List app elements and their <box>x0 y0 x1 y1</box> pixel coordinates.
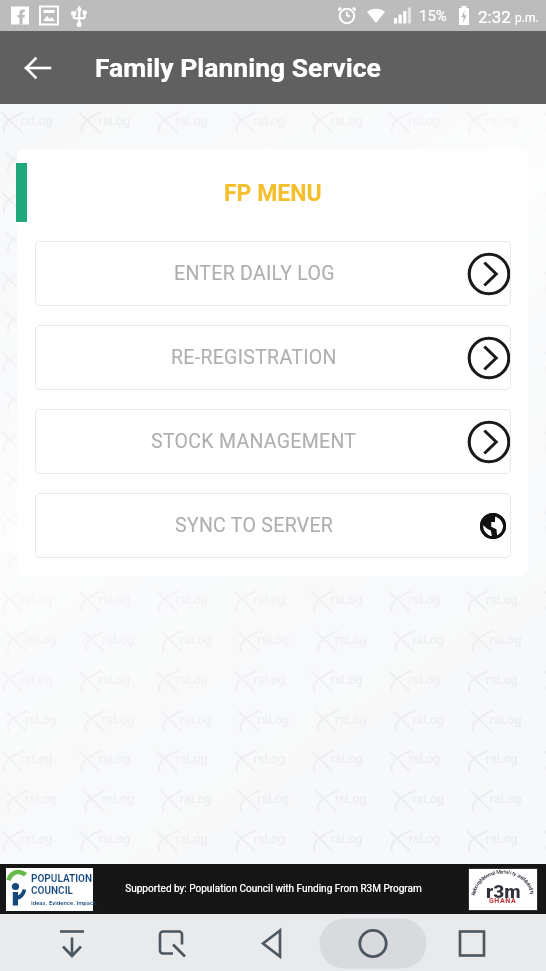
button[interactable]: Recent apps <box>448 920 498 966</box>
staticText: FP MENU <box>224 180 322 207</box>
staticText: Ideas. Evidence. Impact. <box>31 899 97 906</box>
button[interactable]: Back <box>248 920 298 966</box>
button[interactable]: STOCK MANAGEMENT <box>35 409 511 474</box>
staticText: GHANA <box>489 897 517 905</box>
button[interactable]: Home <box>316 920 428 966</box>
button[interactable]: Hide keyboard <box>48 920 98 966</box>
staticText: Supported by: Population Council with Fu… <box>125 883 422 895</box>
staticText: STOCK MANAGEMENT <box>151 430 357 453</box>
staticText: COUNCIL <box>31 885 73 897</box>
staticText: r3m <box>486 880 521 902</box>
button[interactable]: RE-REGISTRATION <box>35 325 511 390</box>
staticText: RE-REGISTRATION <box>171 346 337 369</box>
staticText: ENTER DAILY LOG <box>174 262 335 285</box>
button[interactable]: Back <box>14 44 62 92</box>
button[interactable]: ENTER DAILY LOG <box>35 241 511 306</box>
button[interactable]: Screenshot <box>148 920 198 966</box>
button[interactable]: SYNC TO SERVER <box>35 493 511 558</box>
staticText: p.m. <box>515 11 539 25</box>
staticText: SYNC TO SERVER <box>175 514 334 537</box>
staticText: 15% <box>419 7 447 25</box>
staticText: 2:32 <box>478 7 511 27</box>
staticText: POPULATION <box>31 873 93 885</box>
staticText: Family Planning Service <box>95 52 381 83</box>
